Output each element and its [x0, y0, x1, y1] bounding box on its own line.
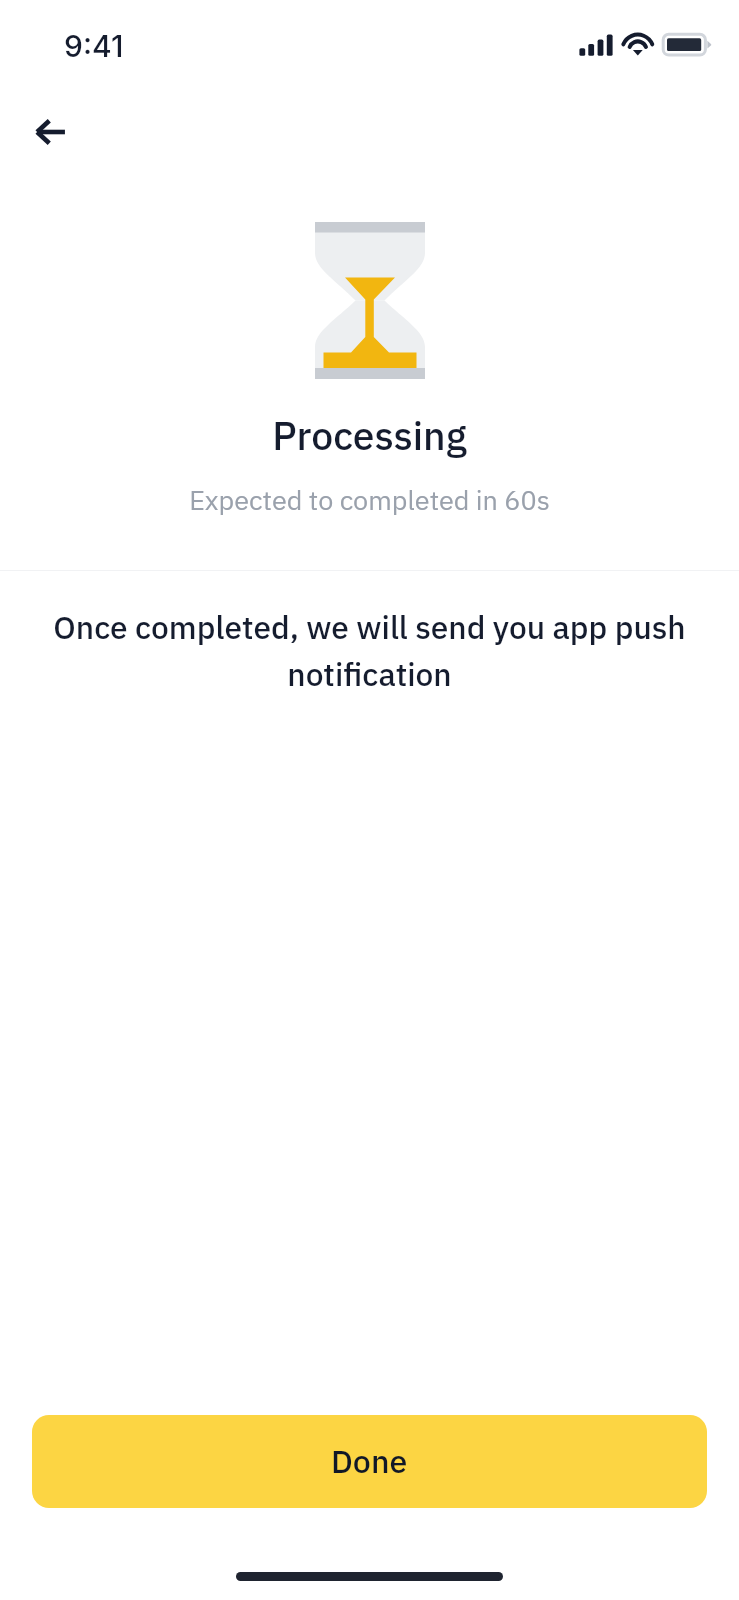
button[interactable]: Done: [32, 1415, 707, 1508]
staticText: Processing: [0, 408, 739, 467]
staticText: Done: [331, 1438, 408, 1486]
staticText: Expected to completed in 60s: [0, 481, 739, 522]
button[interactable]: Back: [20, 109, 82, 155]
staticText: 9:41: [64, 28, 124, 64]
staticText: Once completed, we will send you app pus…: [48, 605, 691, 699]
